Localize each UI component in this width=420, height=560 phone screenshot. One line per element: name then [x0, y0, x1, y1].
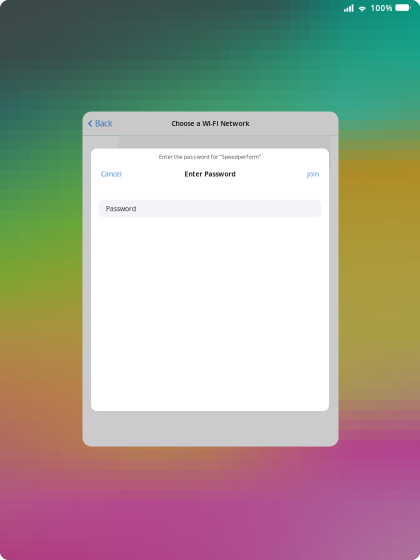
staticText: Enter Password — [184, 170, 235, 178]
staticText: 100% — [370, 3, 392, 13]
staticText: Join — [307, 170, 319, 178]
staticText: Cancel — [101, 170, 122, 178]
staticText: Choose a Wi-Fi Network — [171, 119, 249, 128]
button[interactable]: Join — [303, 167, 323, 181]
button[interactable]: Password — [99, 200, 321, 217]
staticText: Back — [95, 118, 112, 129]
staticText: Enter the password for “Speedperform” — [159, 153, 261, 160]
staticText: Password — [106, 204, 136, 213]
button[interactable]: Back — [82, 111, 117, 135]
button[interactable]: Cancel — [97, 167, 126, 181]
